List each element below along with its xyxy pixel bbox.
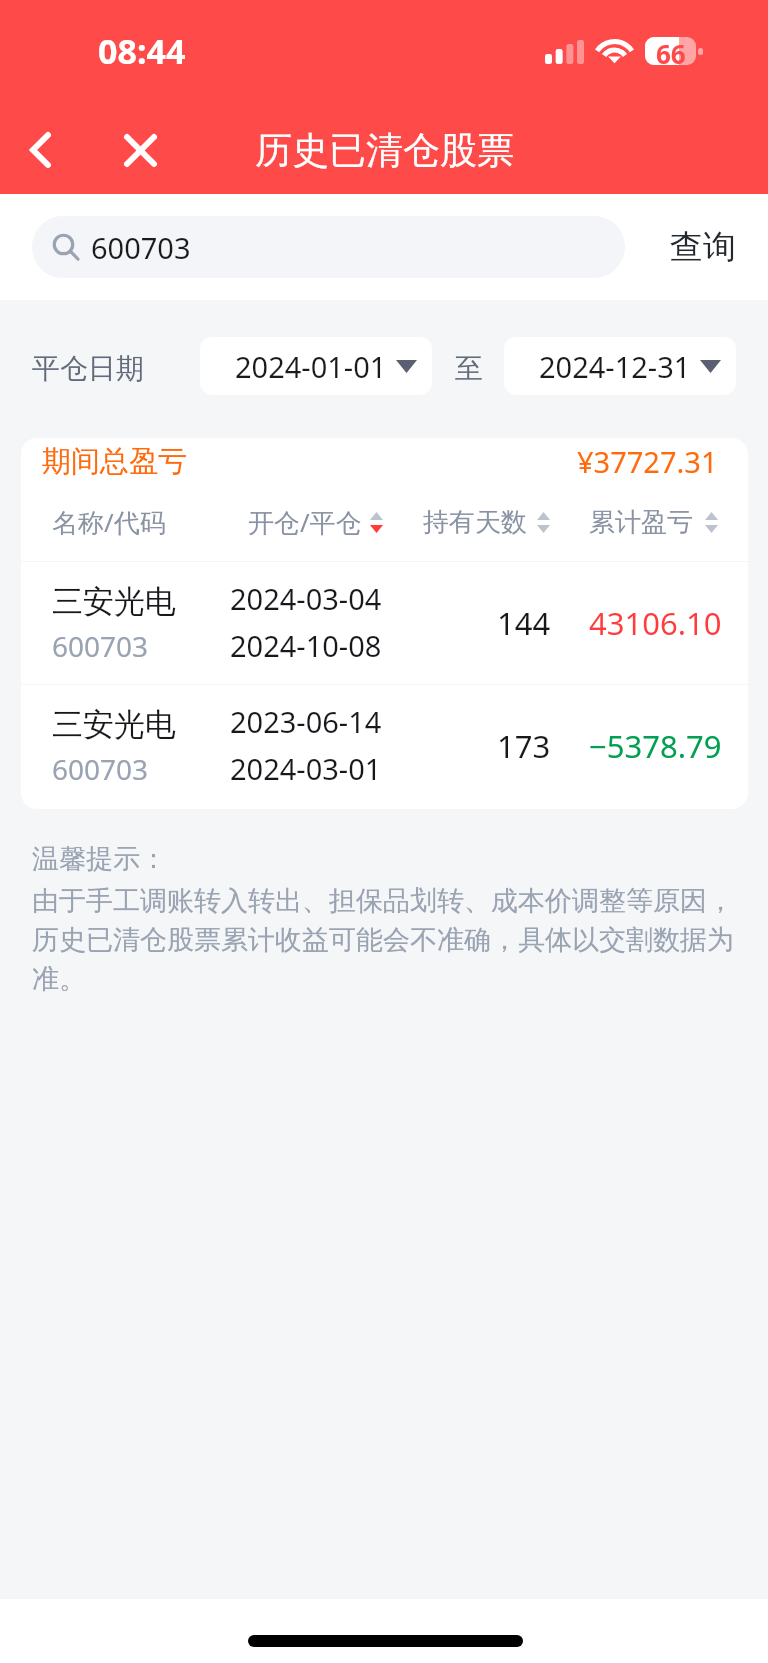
staticText: 温馨提示：: [32, 842, 167, 876]
button[interactable]: 累计盈亏: [589, 506, 718, 539]
button[interactable]: 持有天数: [423, 506, 550, 539]
button[interactable]: 2024-01-01: [200, 337, 432, 395]
staticText: 三安光电: [52, 582, 176, 621]
staticText: 历史已清仓股票: [255, 127, 514, 174]
staticText: 名称/代码: [52, 504, 166, 540]
staticText: 平仓日期: [32, 351, 144, 386]
staticText: 由于手工调账转入转出、担保品划转、成本价调整等原因，历史已清仓股票累计收益可能会…: [32, 884, 744, 996]
staticText: 2024-01-01: [235, 347, 387, 386]
staticText: 2024-03-04: [230, 579, 382, 618]
staticText: 66: [656, 37, 686, 64]
staticText: 2023-06-14: [230, 702, 382, 741]
button[interactable]: 2024-12-31: [504, 337, 736, 395]
staticText: −5378.79: [589, 725, 722, 767]
staticText: 43106.10: [589, 602, 722, 644]
staticText: 三安光电: [52, 705, 176, 744]
button[interactable]: 三安光电: [21, 684, 748, 807]
staticText: 2024-10-08: [230, 626, 382, 665]
staticText: 144: [497, 602, 551, 644]
staticText: ¥37727.31: [577, 442, 718, 481]
staticText: 至: [455, 351, 483, 386]
staticText: 600703: [91, 228, 191, 267]
staticText: 2024-03-01: [230, 749, 382, 788]
staticText: 查询: [670, 226, 736, 268]
staticText: 开仓/平仓: [248, 504, 362, 540]
button[interactable]: 开仓/平仓: [248, 504, 383, 540]
staticText: 持有天数: [423, 506, 527, 539]
staticText: 2024-12-31: [539, 347, 691, 386]
staticText: 600703: [52, 750, 149, 788]
staticText: 600703: [52, 627, 149, 665]
button[interactable]: Back: [0, 103, 80, 197]
button[interactable]: Close: [100, 103, 180, 197]
button[interactable]: 三安光电: [21, 561, 748, 684]
staticText: 累计盈亏: [589, 506, 693, 539]
button[interactable]: 查询: [662, 216, 744, 278]
staticText: 08:44: [98, 28, 186, 74]
button[interactable]: 600703: [32, 216, 625, 278]
staticText: 173: [497, 725, 551, 767]
staticText: 期间总盈亏: [42, 443, 187, 480]
